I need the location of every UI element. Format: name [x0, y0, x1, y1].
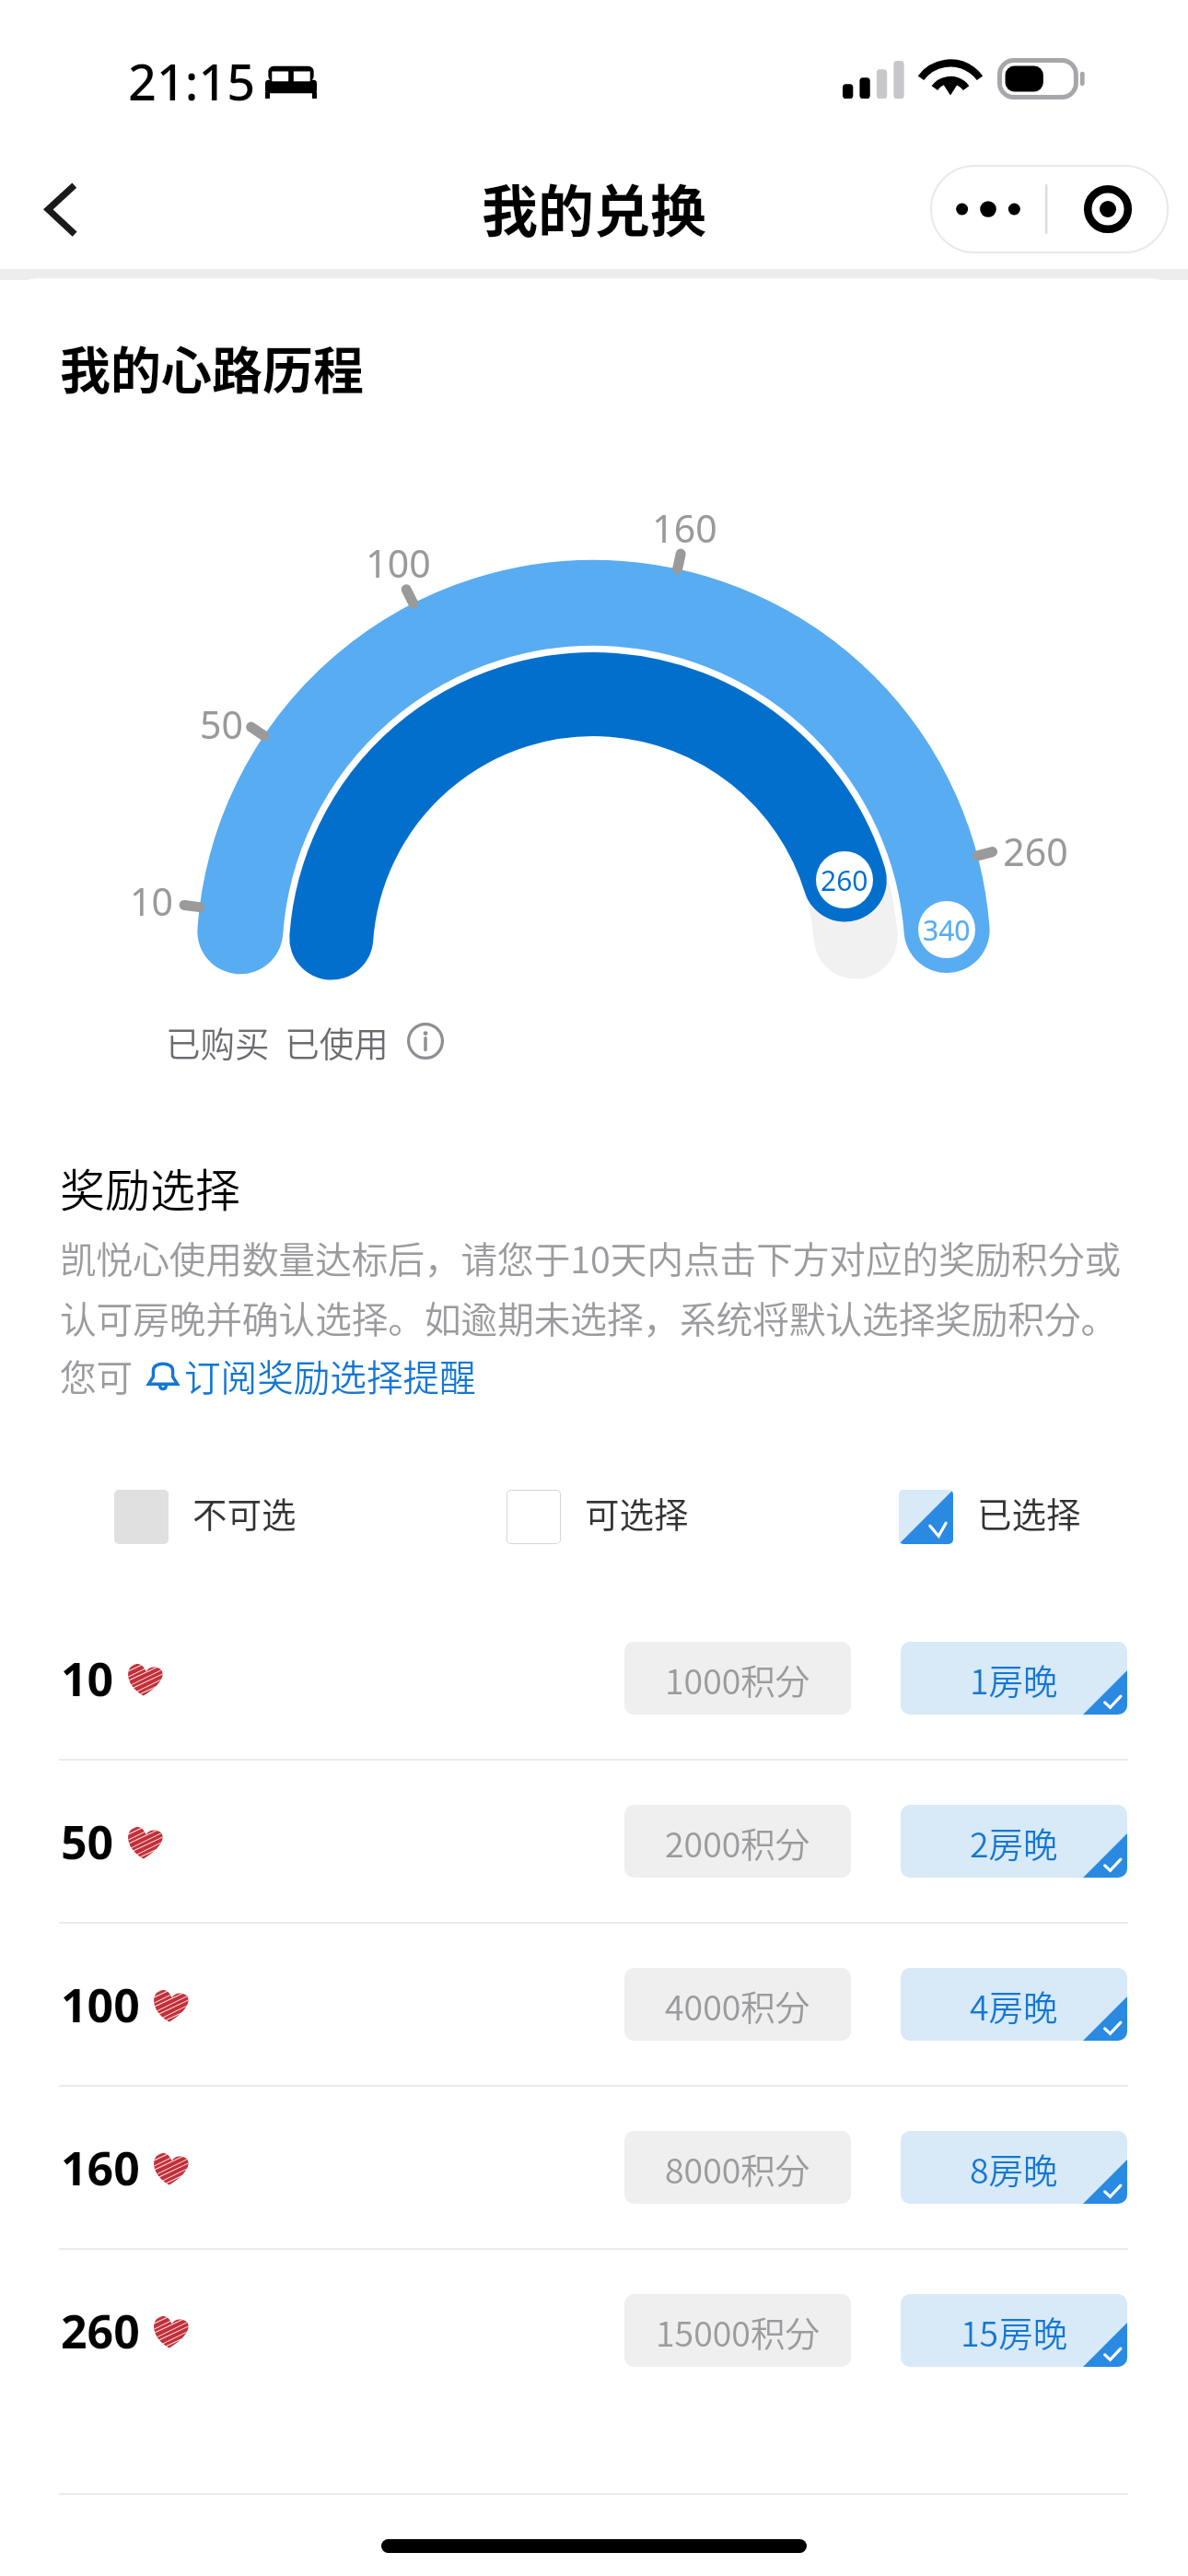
button[interactable]: Info	[407, 1023, 444, 1060]
staticText: 8房晚	[970, 2143, 1058, 2193]
button[interactable]: 已选择	[899, 1490, 1081, 1544]
button[interactable]: 8000积分	[624, 2131, 851, 2204]
staticText: 2房晚	[970, 1817, 1058, 1867]
button[interactable]: 4房晚	[901, 1968, 1127, 2041]
staticText: 15000积分	[656, 2306, 820, 2356]
staticText: 260	[821, 861, 868, 899]
staticText: 1000积分	[665, 1654, 810, 1704]
button[interactable]: 15000积分	[624, 2294, 851, 2367]
button[interactable]: 1000积分	[624, 1642, 851, 1715]
staticText: 15房晚	[961, 2306, 1068, 2356]
staticText: 260	[61, 2300, 140, 2362]
staticText: 可选择	[585, 1487, 689, 1537]
button[interactable]: 2房晚	[901, 1805, 1127, 1878]
staticText: 我的心路历程	[60, 330, 365, 404]
staticText: 100	[61, 1973, 140, 2036]
staticText: 我的兑换	[482, 167, 707, 248]
staticText: 不可选	[192, 1487, 297, 1537]
staticText: 160	[61, 2137, 140, 2199]
staticText: 您可	[60, 1349, 142, 1401]
button[interactable]: 不可选	[114, 1490, 297, 1544]
staticText: 50	[61, 1810, 114, 1873]
button[interactable]: 订阅奖励选择提醒	[142, 1349, 476, 1401]
staticText: 已购买 已使用	[166, 1016, 389, 1066]
staticText: 凯悦心使用数量达标后，请您于10天内点击下方对应的奖励积分或 认可房晚并确认选择…	[60, 1231, 1183, 1343]
staticText: 50	[200, 698, 243, 750]
staticText: 21:15	[128, 47, 256, 115]
staticText: 260	[1003, 825, 1068, 877]
staticText: 10	[61, 1647, 114, 1710]
staticText: 已选择	[977, 1487, 1081, 1537]
staticText: 1房晚	[970, 1654, 1058, 1704]
button[interactable]: 可选择	[507, 1490, 689, 1544]
button[interactable]: 15房晚	[901, 2294, 1127, 2367]
staticText: 10	[130, 875, 173, 927]
button[interactable]: More options	[930, 165, 1046, 253]
staticText: 4房晚	[970, 1980, 1058, 2030]
button[interactable]: 8房晚	[901, 2131, 1127, 2204]
staticText: 160	[652, 502, 717, 554]
staticText: 订阅奖励选择提醒	[184, 1349, 476, 1401]
button[interactable]: 4000积分	[624, 1968, 851, 2041]
staticText: 340	[923, 911, 971, 949]
staticText: 8000积分	[665, 2143, 810, 2193]
button[interactable]: Back	[14, 163, 106, 255]
staticText: 4000积分	[665, 1980, 810, 2030]
button[interactable]: 2000积分	[624, 1805, 851, 1878]
staticText: 奖励选择	[60, 1154, 241, 1220]
button[interactable]: 1房晚	[901, 1642, 1127, 1715]
staticText: 100	[366, 537, 431, 589]
button[interactable]: Close mini program	[1047, 165, 1169, 253]
staticText: 2000积分	[665, 1817, 810, 1867]
